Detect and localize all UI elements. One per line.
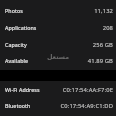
staticText: C0:17:54:A9:C1:DD — [60, 102, 113, 110]
staticText: Photos — [5, 7, 23, 14]
staticText: Available — [5, 57, 29, 64]
staticText: Capacity — [5, 41, 27, 48]
staticText: Applications — [5, 24, 37, 31]
button[interactable]: Photos — [0, 2, 116, 19]
staticText: 11,132 — [94, 7, 113, 15]
button[interactable]: Wi-Fi Address — [0, 81, 116, 98]
staticText: 41.89 GB — [87, 57, 113, 65]
button[interactable]: Capacity — [0, 36, 116, 53]
staticText: Bluetooth — [5, 102, 31, 109]
staticText: C0:17:54:AA:F7:0E — [62, 86, 113, 94]
staticText: 208 — [102, 24, 113, 32]
staticText: Wi-Fi Address — [5, 86, 40, 93]
button[interactable]: Bluetooth — [0, 98, 116, 115]
button[interactable]: Applications — [0, 19, 116, 36]
staticText: 256 GB — [92, 41, 113, 49]
button[interactable]: Available — [0, 53, 116, 70]
staticText: مستعل — [47, 53, 70, 60]
